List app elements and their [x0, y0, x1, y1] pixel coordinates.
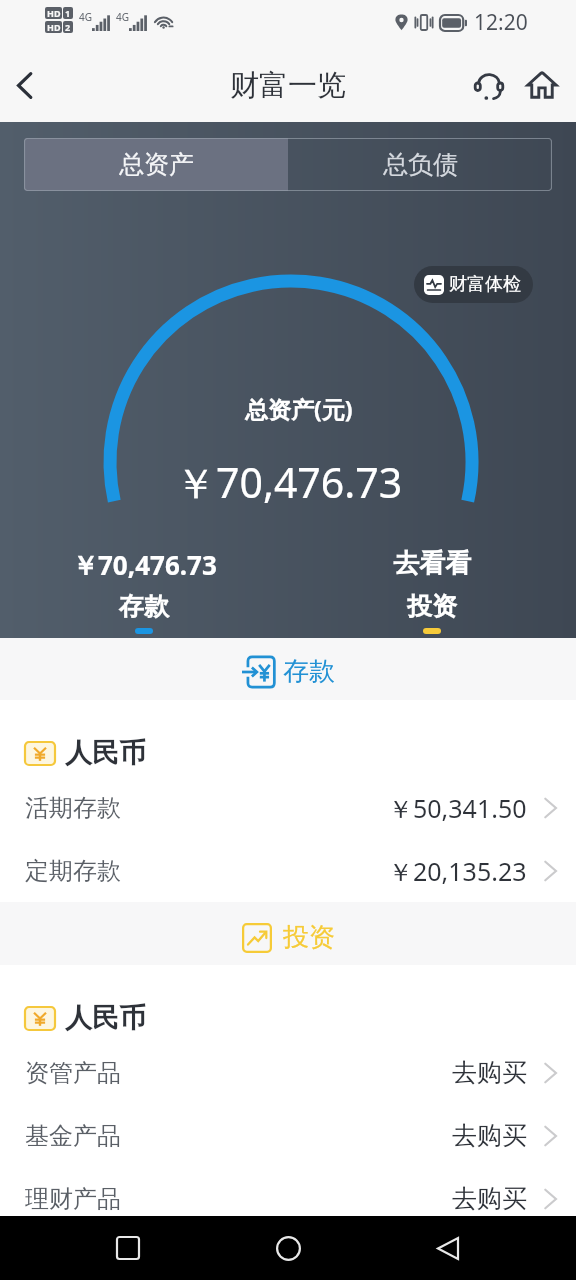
button[interactable]: 存款	[0, 638, 576, 700]
staticText: 存款	[283, 655, 335, 688]
button[interactable]: 定期存款	[0, 839, 576, 902]
staticText: 人民币	[65, 1001, 146, 1035]
staticText: 人民币	[65, 736, 146, 770]
staticText: 总负债	[383, 149, 458, 180]
staticText: ￥50,341.50	[388, 791, 527, 825]
staticText: 总资产	[119, 149, 194, 180]
staticText: 存款	[119, 591, 169, 622]
button[interactable]: Back	[416, 1216, 480, 1280]
staticText: HD	[47, 7, 61, 19]
staticText: 定期存款	[25, 856, 121, 886]
staticText: 投资	[407, 591, 457, 622]
staticText: ￥70,476.73	[72, 547, 217, 583]
button[interactable]: ￥70,476.73	[0, 547, 288, 642]
staticText: HD	[47, 21, 61, 33]
button[interactable]: Home	[256, 1216, 320, 1280]
staticText: 4G	[116, 10, 129, 24]
button[interactable]: 去看看	[288, 547, 576, 642]
staticText: 12:20	[474, 8, 528, 37]
staticText: 总资产(元)	[245, 393, 353, 424]
staticText: 投资	[283, 921, 335, 954]
button[interactable]: Recents	[96, 1216, 160, 1280]
staticText: 去购买	[452, 1120, 527, 1151]
staticText: 4G	[79, 10, 92, 24]
staticText: 去购买	[452, 1183, 527, 1214]
button[interactable]: 总资产	[24, 138, 288, 191]
button[interactable]: 活期存款	[0, 776, 576, 839]
button[interactable]: 投资	[0, 902, 576, 965]
button[interactable]: 总负债	[288, 138, 552, 191]
button[interactable]: 基金产品	[0, 1104, 576, 1167]
staticText: 活期存款	[25, 793, 121, 823]
staticText: 2	[65, 21, 71, 33]
staticText: 理财产品	[25, 1184, 121, 1214]
staticText: 资管产品	[25, 1058, 121, 1088]
button[interactable]: 理财产品	[0, 1167, 576, 1230]
staticText: 基金产品	[25, 1121, 121, 1151]
staticText: 去购买	[452, 1057, 527, 1088]
button[interactable]: Back	[0, 48, 48, 122]
staticText: 财富体检	[449, 273, 521, 296]
button[interactable]: 资管产品	[0, 1041, 576, 1104]
staticText: ￥70,476.73	[175, 454, 403, 510]
button[interactable]: Customer service	[462, 59, 515, 112]
button[interactable]: Home	[515, 59, 568, 112]
button[interactable]: 财富体检	[414, 266, 533, 303]
staticText: 1	[65, 7, 71, 19]
staticText: 财富一览	[230, 67, 346, 104]
staticText: 去看看	[393, 547, 471, 580]
staticText: ￥20,135.23	[388, 854, 527, 888]
